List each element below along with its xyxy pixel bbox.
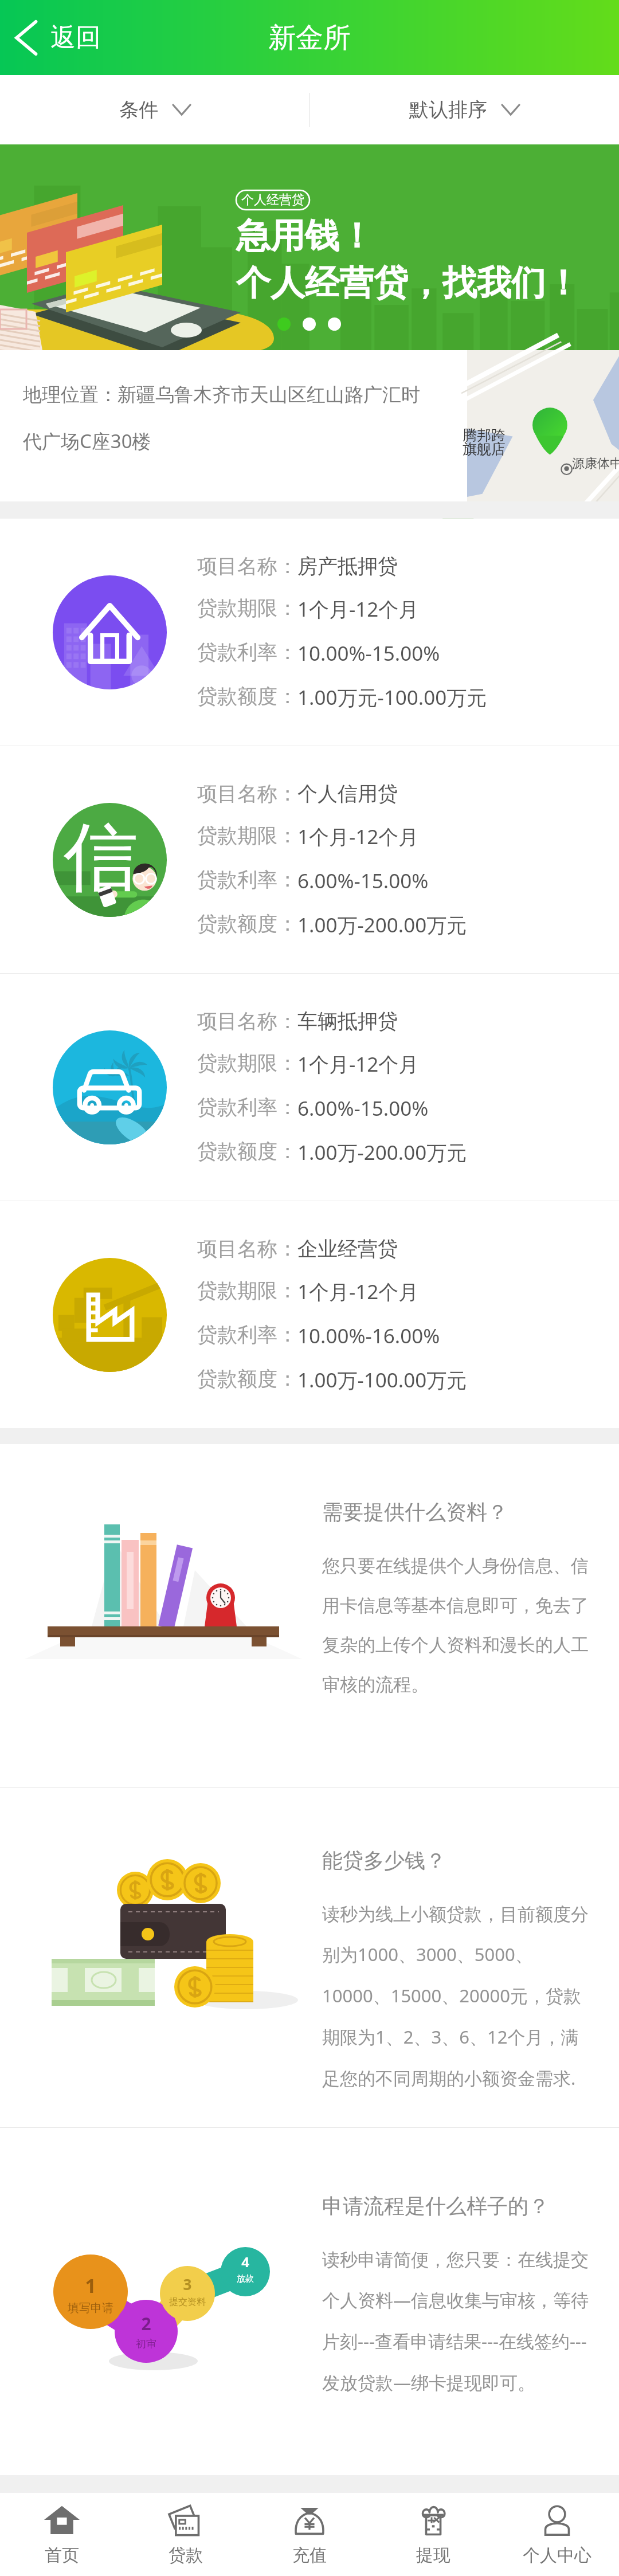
staticText: 10.00%-16.00% (297, 1322, 440, 1350)
staticText: 提现 (416, 2544, 450, 2566)
staticText: 贷款利率： (197, 867, 297, 892)
button[interactable]: 首页 (0, 2493, 124, 2576)
staticText: 1个月-12个月 (297, 595, 419, 623)
button[interactable]: 贷款 (124, 2493, 248, 2576)
staticText: 源康体中心 (572, 456, 619, 472)
staticText: 贷款额度： (197, 684, 297, 709)
staticText: 贷款利率： (197, 1095, 297, 1120)
staticText: 地理位置：新疆乌鲁木齐市天山区红山路广汇时代广场C座30楼 (23, 383, 424, 454)
staticText: 首页 (45, 2544, 79, 2566)
staticText: 项目名称： (197, 1236, 297, 1261)
staticText: 1个月-12个月 (297, 823, 419, 850)
staticText: 新金所 (268, 21, 351, 55)
staticText: 申请流程是什么样子的？ (322, 2193, 549, 2219)
staticText: 贷款利率： (197, 640, 297, 665)
staticText: 信 (64, 811, 138, 905)
staticText: 填写申请 (56, 2301, 125, 2315)
staticText: 1.00万-100.00万元 (297, 1366, 467, 1394)
staticText: 企业经营贷 (297, 1236, 398, 1261)
button[interactable]: Back (0, 0, 112, 75)
button[interactable]: 项目名称： (0, 974, 619, 1201)
staticText: 贷款期限： (197, 1278, 297, 1303)
staticText: 能贷多少钱？ (322, 1848, 446, 1873)
staticText: 放款 (211, 2273, 280, 2284)
staticText: 读秒为线上小额贷款，目前额度分别为1000、3000、5000、10000、15… (322, 1903, 596, 2090)
staticText: 1.00万-200.00万元 (297, 1139, 467, 1166)
staticText: 个人中心 (523, 2544, 591, 2566)
staticText: 1个月-12个月 (297, 1278, 419, 1305)
staticText: 返回 (50, 22, 101, 53)
staticText: 1.00万-200.00万元 (297, 911, 467, 939)
staticText: 腾邦跨 (463, 426, 506, 444)
staticText: 默认排序 (409, 97, 487, 122)
staticText: 贷款利率： (197, 1322, 297, 1347)
staticText: 需要提供什么资料？ (322, 1499, 508, 1525)
staticText: 您只要在线提供个人身份信息、信用卡信息等基本信息即可，免去了复杂的上传个人资料和… (322, 1555, 596, 1696)
staticText: 10.00%-15.00% (297, 640, 440, 667)
button[interactable]: 项目名称： (0, 1201, 619, 1428)
staticText: 项目名称： (197, 1009, 297, 1034)
staticText: 3 (153, 2274, 222, 2294)
staticText: 贷款额度： (197, 1366, 297, 1391)
staticText: 房产抵押贷 (297, 554, 398, 579)
staticText: 个人信用贷 (297, 781, 398, 806)
button[interactable]: 信 (0, 746, 619, 973)
staticText: 充值 (292, 2544, 327, 2566)
staticText: 6.00%-15.00% (297, 867, 429, 895)
button[interactable]: 默认排序 (309, 75, 619, 144)
staticText: 贷款额度： (197, 1139, 297, 1164)
staticText: 贷款期限： (197, 1050, 297, 1076)
staticText: 1.00万元-100.00万元 (297, 684, 487, 711)
staticText: 车辆抵押贷 (297, 1009, 398, 1034)
staticText: 急用钱！ (236, 214, 374, 258)
staticText: 读秒申请简便，您只要：在线提交个人资料—信息收集与审核，等待片刻---查看申请结… (322, 2249, 596, 2394)
staticText: 4 (211, 2252, 280, 2271)
button[interactable]: 条件 (0, 75, 309, 144)
staticText: 项目名称： (197, 554, 297, 579)
staticText: 项目名称： (197, 781, 297, 806)
button[interactable]: 个人中心 (495, 2493, 619, 2576)
staticText: 初审 (112, 2338, 181, 2351)
button[interactable]: 提现 (371, 2493, 495, 2576)
staticText: 旗舰店 (463, 440, 506, 458)
staticText: 条件 (119, 97, 158, 122)
staticText: 个人经营贷，找我们！ (236, 261, 580, 305)
staticText: 贷款额度： (197, 911, 297, 936)
staticText: 贷款期限： (197, 595, 297, 621)
button[interactable]: Map location (467, 350, 619, 501)
other: Back (11, 19, 40, 56)
button[interactable]: 项目名称： (0, 519, 619, 746)
button[interactable]: 充值 (248, 2493, 371, 2576)
staticText: 个人经营贷 (241, 192, 304, 208)
staticText: 提交资料 (153, 2296, 222, 2308)
staticText: 贷款期限： (197, 823, 297, 848)
staticText: 1 (56, 2272, 125, 2299)
staticText: 贷款 (169, 2544, 203, 2566)
staticText: 6.00%-15.00% (297, 1095, 429, 1122)
staticText: 1个月-12个月 (297, 1050, 419, 1078)
staticText: 2 (112, 2312, 181, 2335)
